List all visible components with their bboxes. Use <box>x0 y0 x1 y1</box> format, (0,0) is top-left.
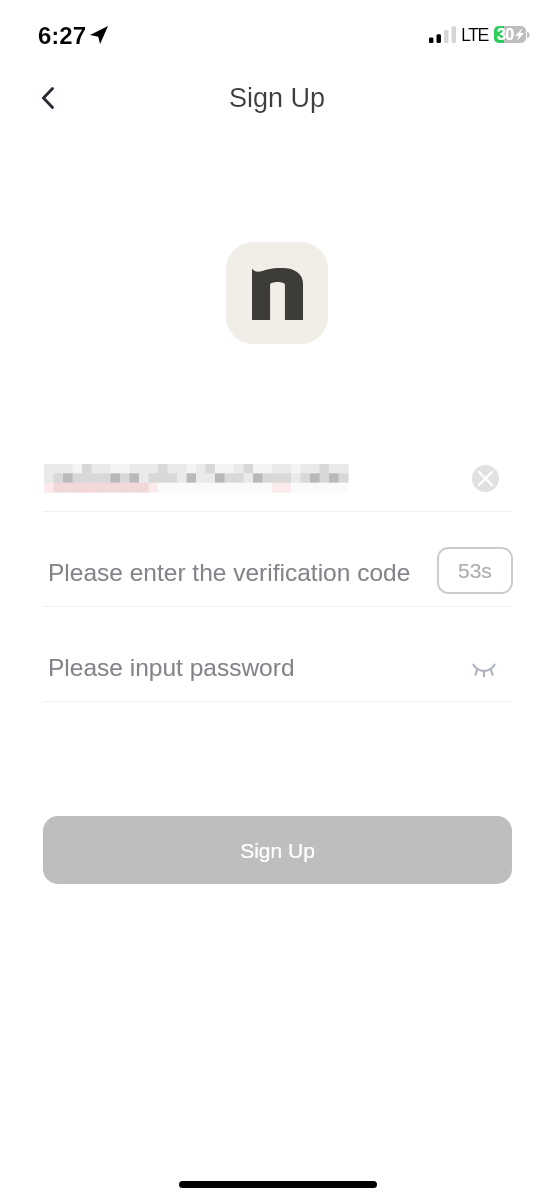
button[interactable]: 53s <box>437 547 513 594</box>
staticText: Sign Up <box>240 839 315 862</box>
staticText: 30 <box>497 26 514 43</box>
staticText: LTE <box>461 25 488 45</box>
button[interactable]: Show password <box>464 650 504 690</box>
button[interactable]: Clear text <box>465 458 505 498</box>
button[interactable]: Please enter the verification code <box>43 541 512 605</box>
button[interactable]: Please input password <box>43 636 512 700</box>
button[interactable]: Sign Up <box>43 816 512 884</box>
staticText: Sign Up <box>229 83 326 113</box>
staticText: Please enter the verification code <box>48 559 411 586</box>
button[interactable]: Account <box>43 449 512 511</box>
staticText: 6:27 <box>38 22 87 49</box>
button[interactable]: Back <box>23 73 72 122</box>
staticText: Please input password <box>48 654 295 681</box>
staticText: 53s <box>458 559 492 582</box>
